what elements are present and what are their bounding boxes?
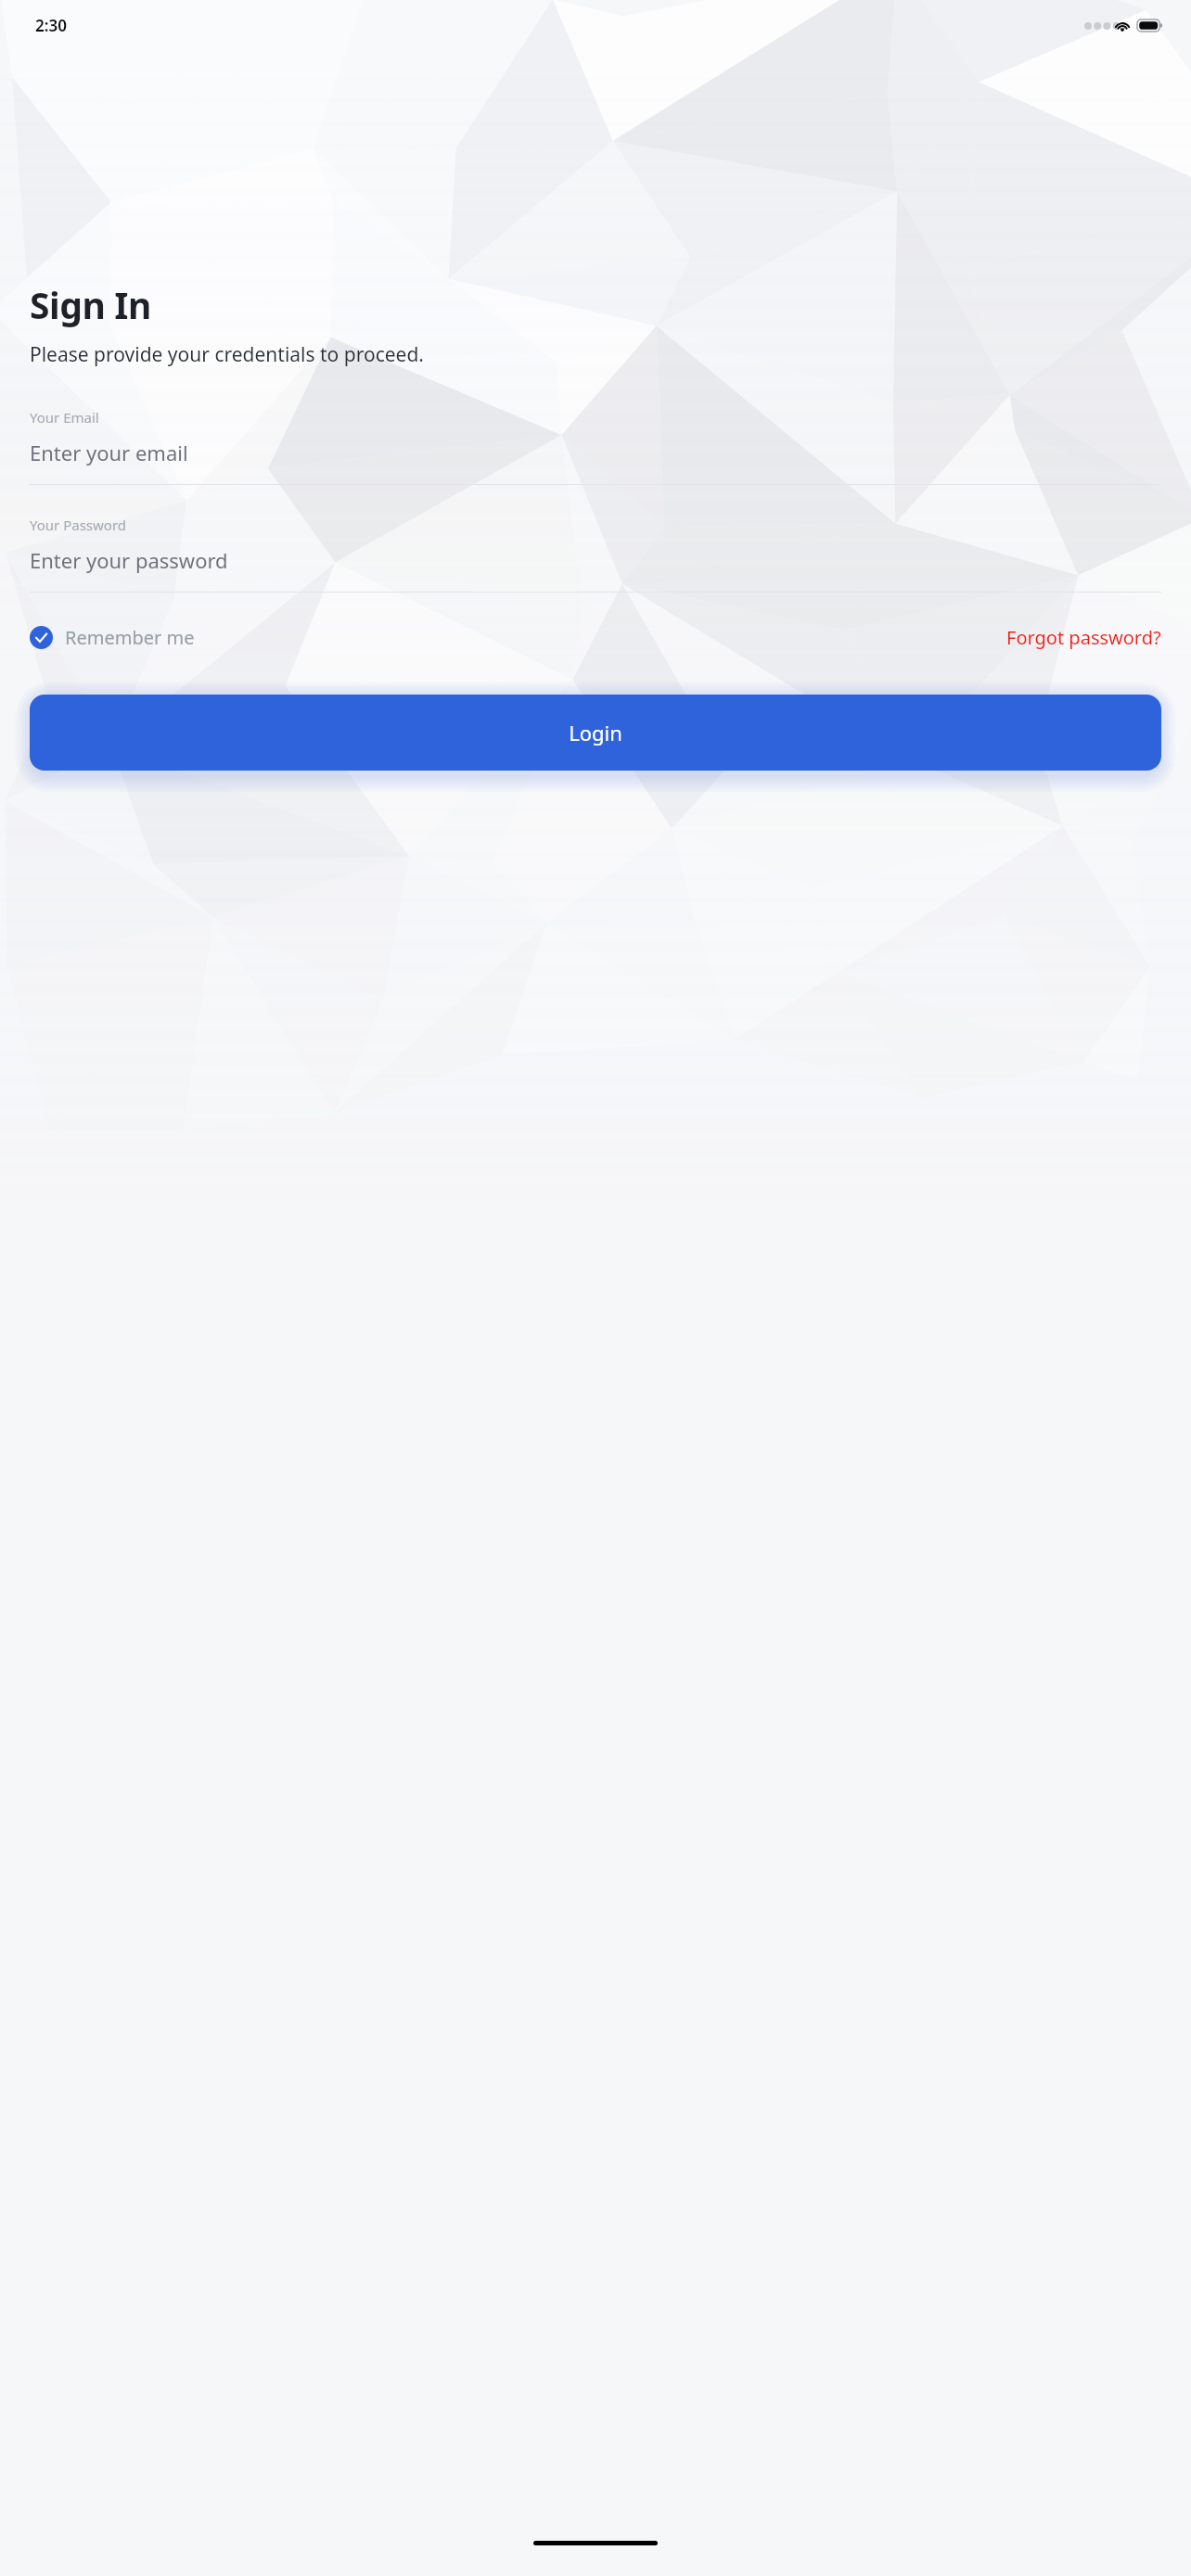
button[interactable]: Your Password <box>30 516 1161 593</box>
staticText: Your Password <box>30 516 127 534</box>
button[interactable]: Login <box>30 695 1161 771</box>
staticText: Enter your email <box>30 439 188 466</box>
staticText: Sign In <box>30 280 152 329</box>
staticText: Your Email <box>30 408 99 427</box>
button[interactable]: Your Email <box>30 408 1161 485</box>
button[interactable]: Forgot password? <box>1006 625 1161 650</box>
button[interactable]: Remember me <box>30 625 195 650</box>
staticText: Forgot password? <box>1006 625 1161 650</box>
staticText: Login <box>569 719 622 746</box>
staticText: Remember me <box>65 625 195 650</box>
staticText: Please provide your credentials to proce… <box>30 341 424 368</box>
staticText: 2:30 <box>35 15 67 36</box>
staticText: Enter your password <box>30 546 228 574</box>
